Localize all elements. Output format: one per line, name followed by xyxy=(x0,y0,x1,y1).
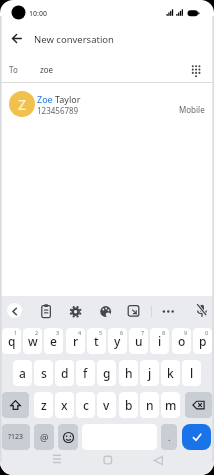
staticText: c xyxy=(83,397,89,413)
button[interactable]: j xyxy=(140,360,159,386)
staticText: @ xyxy=(40,431,49,444)
button[interactable] xyxy=(2,392,29,418)
staticText: j xyxy=(148,365,152,381)
staticText: 9 xyxy=(184,329,188,336)
button[interactable]: m xyxy=(161,392,180,418)
button[interactable]: s xyxy=(34,360,53,386)
button[interactable]: @ xyxy=(34,424,54,450)
staticText: Mobile xyxy=(179,104,205,115)
button[interactable] xyxy=(46,449,68,471)
button[interactable]: b xyxy=(119,392,138,418)
button[interactable]: u xyxy=(129,328,148,354)
staticText: e xyxy=(50,333,57,349)
staticText: o xyxy=(178,333,186,349)
button[interactable]: ?123 xyxy=(2,424,30,450)
staticText: 7 xyxy=(141,329,145,336)
button[interactable]: . xyxy=(161,424,177,450)
staticText: 5 xyxy=(99,329,103,336)
staticText: b xyxy=(125,397,133,413)
staticText: i xyxy=(158,333,162,349)
staticText: ?123 xyxy=(8,432,24,442)
staticText: 6 xyxy=(120,329,124,336)
button[interactable] xyxy=(58,424,78,450)
button[interactable] xyxy=(182,424,211,450)
button[interactable] xyxy=(156,303,173,320)
staticText: Zoe Taylor xyxy=(37,93,81,105)
staticText: New conversation xyxy=(34,33,114,46)
staticText: g xyxy=(103,365,111,381)
staticText: 0 xyxy=(205,329,209,336)
button[interactable] xyxy=(7,303,22,318)
button[interactable]: z xyxy=(34,392,53,418)
staticText: z xyxy=(41,397,47,413)
staticText: f xyxy=(83,365,88,381)
button[interactable]: h xyxy=(119,360,138,386)
button[interactable]: y xyxy=(108,328,127,354)
staticText: l xyxy=(190,365,194,381)
staticText: y xyxy=(114,333,121,349)
staticText: n xyxy=(146,397,154,413)
staticText: 8 xyxy=(162,329,166,336)
button[interactable]: f xyxy=(76,360,95,386)
button[interactable]: g xyxy=(97,360,116,386)
staticText: m xyxy=(165,397,177,413)
button[interactable] xyxy=(98,303,115,320)
button[interactable]: p xyxy=(193,328,212,354)
button[interactable]: i xyxy=(150,328,169,354)
staticText: x xyxy=(61,397,68,413)
button[interactable]: x xyxy=(55,392,74,418)
button[interactable] xyxy=(192,303,209,320)
button[interactable]: a xyxy=(13,360,32,386)
staticText: a xyxy=(19,365,26,381)
staticText: Z xyxy=(18,95,27,114)
button[interactable]: r xyxy=(66,328,85,354)
staticText: w xyxy=(28,333,38,349)
button[interactable]: l xyxy=(182,360,201,386)
staticText: 123456789 xyxy=(37,105,79,116)
staticText: zoe xyxy=(40,64,54,75)
button[interactable] xyxy=(126,303,143,320)
button[interactable] xyxy=(97,449,119,471)
staticText: p xyxy=(199,333,207,349)
staticText: h xyxy=(125,365,133,381)
staticText: 3 xyxy=(56,329,60,336)
button[interactable]: e xyxy=(44,328,63,354)
staticText: s xyxy=(41,365,47,381)
button[interactable]: w xyxy=(23,328,42,354)
staticText: k xyxy=(167,365,174,381)
button[interactable]: v xyxy=(97,392,116,418)
button[interactable] xyxy=(0,86,214,122)
button[interactable] xyxy=(0,26,214,51)
staticText: q xyxy=(8,333,16,349)
staticText: r xyxy=(73,333,79,349)
staticText: 2 xyxy=(35,329,39,336)
button[interactable] xyxy=(38,303,55,320)
button[interactable] xyxy=(147,449,169,471)
button[interactable]: o xyxy=(172,328,191,354)
button[interactable]: n xyxy=(140,392,159,418)
button[interactable]: d xyxy=(55,360,74,386)
staticText: d xyxy=(61,365,69,381)
button[interactable] xyxy=(185,392,212,418)
staticText: v xyxy=(103,397,110,413)
staticText: u xyxy=(135,333,143,349)
staticText: t xyxy=(94,333,99,349)
button[interactable] xyxy=(68,303,85,320)
button[interactable]: q xyxy=(2,328,21,354)
staticText: 1 xyxy=(14,329,18,336)
staticText: 4 xyxy=(78,329,82,336)
staticText: . xyxy=(168,431,171,443)
button[interactable] xyxy=(0,55,214,82)
button[interactable]: c xyxy=(76,392,95,418)
staticText: 10:00 xyxy=(29,9,47,19)
staticText: To xyxy=(9,64,18,75)
button[interactable]: t xyxy=(87,328,106,354)
button[interactable]: k xyxy=(161,360,180,386)
